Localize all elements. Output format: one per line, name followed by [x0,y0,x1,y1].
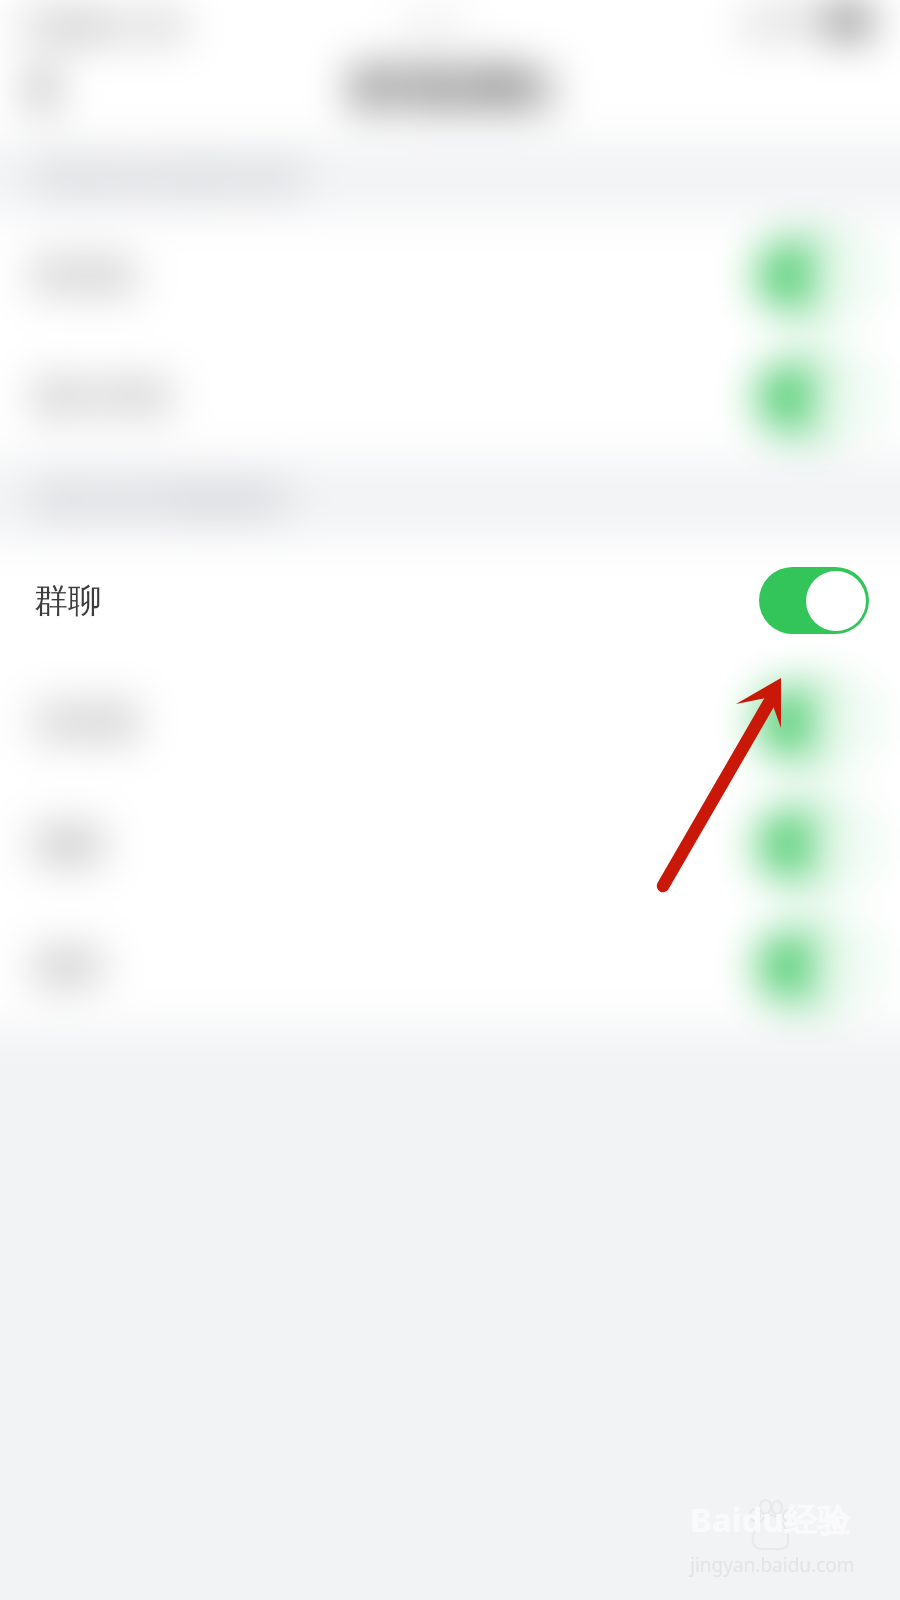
button[interactable]: 群聊 [0,539,900,661]
staticText: 显示详情 [34,376,170,419]
staticText: jingyan.baidu.com [690,1552,855,1578]
button[interactable]: 显示详情 switch, on [759,364,869,431]
button[interactable]: 视频 switch, on [759,811,869,878]
button[interactable]: 显示详情 [0,336,900,458]
button[interactable]: 新消息 [0,214,900,336]
button[interactable]: Back [8,54,78,124]
staticText: 群聊 [34,579,102,622]
other: Arrow pointing at the group chat switch [0,0,900,1600]
button[interactable]: 邀请 switch, on [759,933,869,1000]
button[interactable]: 群聊 switch, on [759,567,869,634]
staticText: 新消息通知 [350,63,550,113]
staticText: 语音通 [34,701,136,744]
staticText: 视频 [34,823,102,866]
button[interactable]: 邀请 [0,905,900,1027]
staticText: 10:25 [400,8,462,41]
staticText: 邀请 [34,945,102,988]
staticText: Baidu经验 [690,1497,850,1542]
button[interactable]: 新消息 switch, on [759,242,869,309]
button[interactable]: 视频 [0,783,900,905]
button[interactable]: 语音通 [0,661,900,783]
button[interactable] [0,539,900,661]
button[interactable]: 语音通 switch, on [759,689,869,756]
staticText: 新消息 [34,254,136,297]
staticText: 中国移动 4G [19,6,197,44]
